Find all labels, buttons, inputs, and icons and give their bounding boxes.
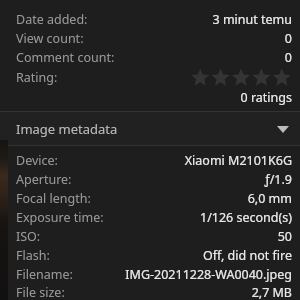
staticText: Focal length: — [16, 190, 91, 207]
staticText: Comment count: — [16, 49, 115, 66]
staticText: IMG-20211228-WA0040.jpeg — [79, 266, 292, 283]
staticText: Xiaomi M2101K6G — [64, 152, 292, 169]
button[interactable]: Exposure time: — [0, 208, 300, 227]
staticText: Exposure time: — [16, 209, 104, 226]
staticText: 2,7 MB — [71, 284, 292, 300]
staticText: View count: — [16, 30, 84, 47]
button[interactable]: Comment count: — [0, 48, 300, 67]
button[interactable]: Image metadata — [0, 112, 300, 145]
staticText: Date added: — [16, 11, 88, 28]
button[interactable]: File size: — [0, 284, 300, 300]
button[interactable]: ISO: — [0, 227, 300, 246]
staticText: 0 — [121, 49, 292, 66]
staticText: 1/126 second(s) — [110, 209, 292, 226]
staticText: Aperture: — [16, 171, 72, 188]
staticText: 50 — [47, 228, 292, 245]
button[interactable]: Flash: — [0, 246, 300, 265]
other: Rating: 0 of 5 stars — [190, 68, 292, 88]
staticText: Filename: — [16, 266, 73, 283]
button[interactable]: Device: — [0, 151, 300, 170]
staticText: Off, did not fire — [56, 247, 292, 264]
button[interactable]: Filename: — [0, 265, 300, 284]
staticText: ISO: — [16, 228, 41, 245]
staticText: File size: — [16, 284, 65, 300]
button[interactable]: Rating: — [0, 67, 300, 88]
button[interactable]: View count: — [0, 29, 300, 48]
staticText: Flash: — [16, 247, 50, 264]
staticText: 6,0 mm — [97, 190, 292, 207]
button[interactable]: Aperture: — [0, 170, 300, 189]
staticText: 3 minut temu — [94, 11, 292, 28]
staticText: 0 — [90, 30, 292, 47]
staticText: Device: — [16, 152, 58, 169]
staticText: 0 ratings — [16, 89, 292, 106]
other: Collapse image metadata — [274, 120, 292, 138]
staticText: ƒ/1.9 — [78, 171, 292, 188]
staticText: Rating: — [16, 69, 58, 86]
staticText: Image metadata — [16, 120, 118, 138]
button[interactable]: Date added: — [0, 9, 300, 29]
button[interactable]: Focal length: — [0, 189, 300, 208]
